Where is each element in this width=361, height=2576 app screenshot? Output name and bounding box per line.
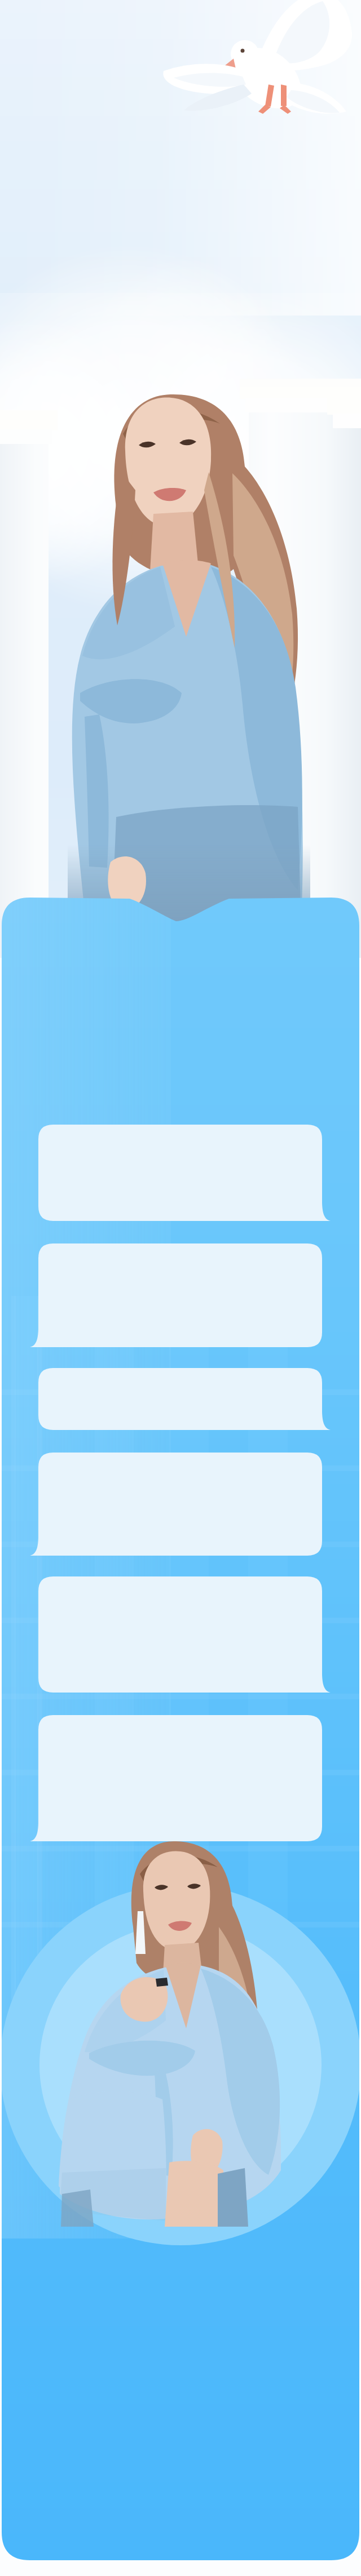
button[interactable] — [38, 1368, 322, 1430]
button[interactable] — [38, 1576, 322, 1693]
button[interactable] — [38, 1453, 322, 1556]
button[interactable] — [38, 1125, 322, 1221]
button[interactable] — [38, 1715, 322, 1841]
button[interactable] — [38, 1243, 322, 1347]
